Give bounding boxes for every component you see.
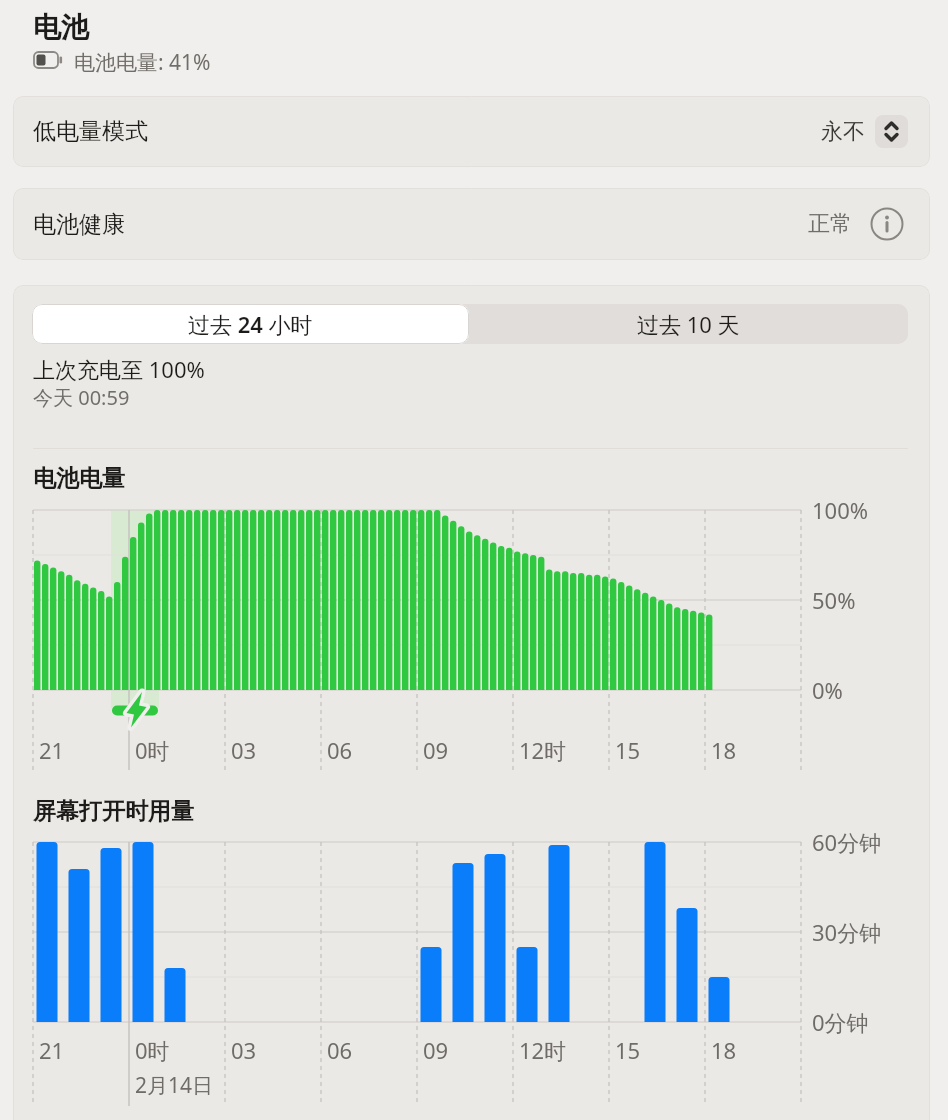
staticText: 06 [327, 1035, 353, 1065]
staticText: 0分钟 [812, 1007, 869, 1037]
staticText: 电池电量: 41% [74, 48, 211, 77]
staticText: 屏幕打开时用量 [33, 797, 194, 826]
staticText: 30分钟 [812, 917, 882, 947]
staticText: 过去 24 小时 [188, 309, 313, 339]
staticText: 09 [423, 1035, 449, 1065]
staticText: 今天 00:59 [33, 384, 130, 411]
staticText: 2月14日 [135, 1071, 214, 1100]
staticText: 过去 10 天 [637, 309, 740, 339]
staticText: 18 [711, 735, 737, 765]
staticText: 12时 [519, 735, 567, 765]
staticText: 12时 [519, 1035, 567, 1065]
staticText: 03 [231, 1035, 257, 1065]
staticText: 18 [711, 1035, 737, 1065]
staticText: 21 [39, 735, 65, 765]
button[interactable]: 过去 10 天 [469, 304, 908, 344]
staticText: 电池 [33, 10, 89, 45]
staticText: 永不 [821, 118, 865, 146]
staticText: 0% [812, 675, 843, 705]
staticText: 0时 [135, 1035, 170, 1065]
staticText: 15 [615, 1035, 641, 1065]
staticText: 60分钟 [812, 827, 882, 857]
staticText: 0时 [135, 735, 170, 765]
button[interactable] [875, 115, 908, 148]
staticText: 上次充电至 100% [33, 354, 205, 384]
button[interactable]: 低电量模式 [13, 96, 930, 167]
staticText: 09 [423, 735, 449, 765]
button[interactable]: 电池健康 [13, 188, 930, 260]
staticText: 低电量模式 [33, 117, 148, 146]
staticText: 03 [231, 735, 257, 765]
staticText: 06 [327, 735, 353, 765]
button[interactable]: 过去 24 小时 [32, 304, 469, 344]
staticText: 正常 [808, 210, 852, 238]
staticText: 50% [812, 585, 856, 615]
staticText: 21 [39, 1035, 65, 1065]
staticText: 电池电量 [33, 464, 125, 493]
staticText: 电池健康 [33, 210, 125, 239]
staticText: 100% [812, 495, 869, 525]
staticText: 15 [615, 735, 641, 765]
